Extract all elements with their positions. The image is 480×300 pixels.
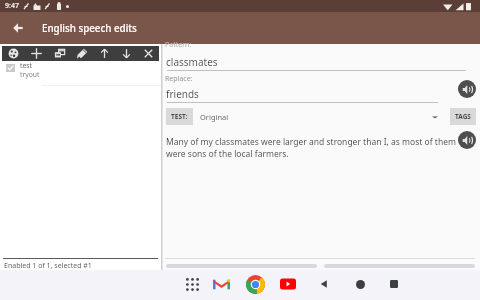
button[interactable]: TEST: bbox=[166, 108, 193, 125]
staticText: Pattern: bbox=[165, 40, 192, 50]
staticText: Original bbox=[200, 112, 229, 122]
staticText: TEST: bbox=[171, 112, 188, 121]
button[interactable]: Back bbox=[312, 272, 336, 296]
staticText: test bbox=[20, 61, 32, 70]
button[interactable]: All apps bbox=[180, 272, 204, 296]
staticText: Enabled 1 of 1, selected #1 bbox=[4, 261, 92, 270]
button[interactable]: Delete bbox=[137, 46, 159, 61]
button[interactable]: Original bbox=[193, 108, 450, 125]
staticText: classmates bbox=[166, 55, 218, 69]
button[interactable]: Edit bbox=[71, 46, 93, 61]
button[interactable]: test bbox=[0, 61, 161, 85]
staticText: Many of my classmates were larger and st… bbox=[166, 136, 469, 160]
button[interactable]: Gmail bbox=[209, 272, 233, 296]
button[interactable]: Move down bbox=[115, 46, 137, 61]
button[interactable]: Play audio bbox=[458, 80, 476, 98]
button[interactable]: Move up bbox=[93, 46, 115, 61]
button[interactable]: Recents bbox=[382, 272, 406, 296]
button[interactable]: Back bbox=[9, 19, 27, 37]
staticText: English speech edits bbox=[42, 22, 137, 35]
staticText: friends bbox=[166, 87, 199, 101]
staticText: tryout bbox=[20, 70, 40, 79]
staticText: 9:47 bbox=[5, 1, 19, 11]
button[interactable]: Duplicate bbox=[48, 46, 71, 61]
button[interactable]: Chrome bbox=[243, 272, 267, 296]
button[interactable]: Play audio bbox=[458, 131, 476, 149]
staticText: TAGS bbox=[455, 112, 471, 121]
button[interactable]: Language bbox=[2, 46, 25, 61]
button[interactable]: YouTube bbox=[276, 272, 300, 296]
button[interactable]: Add bbox=[25, 46, 48, 61]
button[interactable]: TAGS bbox=[450, 108, 476, 125]
button[interactable]: Home bbox=[348, 272, 372, 296]
staticText: Replace: bbox=[165, 74, 193, 84]
